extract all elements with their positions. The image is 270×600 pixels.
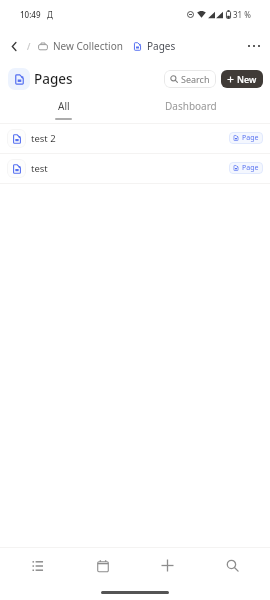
- button[interactable]: Add: [135, 548, 200, 583]
- button[interactable]: Search: [200, 548, 265, 583]
- staticText: 31 %: [233, 9, 251, 20]
- staticText: All: [58, 99, 70, 113]
- staticText: test 2: [31, 132, 56, 145]
- staticText: test: [31, 162, 48, 175]
- staticText: Pages: [147, 39, 176, 53]
- button[interactable]: Calendar: [70, 548, 135, 583]
- button[interactable]: test 2: [0, 124, 270, 153]
- staticText: Д: [47, 9, 53, 20]
- button[interactable]: Search: [164, 70, 216, 88]
- staticText: New: [237, 73, 257, 85]
- staticText: 10:49: [20, 9, 41, 20]
- button[interactable]: Back: [5, 37, 23, 55]
- staticText: Page: [242, 163, 259, 173]
- staticText: Pages: [34, 70, 73, 88]
- staticText: Dashboard: [165, 99, 217, 113]
- button[interactable]: New: [221, 70, 263, 88]
- button[interactable]: Dashboard: [127, 96, 254, 123]
- staticText: /: [27, 40, 31, 52]
- staticText: Search: [181, 73, 210, 85]
- button[interactable]: All: [0, 96, 127, 123]
- staticText: Page: [242, 133, 259, 143]
- button[interactable]: Lists: [5, 548, 70, 583]
- button[interactable]: New Collection: [38, 39, 123, 53]
- button[interactable]: Pages: [133, 39, 176, 53]
- button[interactable]: test: [0, 154, 270, 183]
- button[interactable]: More options: [244, 36, 264, 56]
- staticText: New Collection: [53, 39, 123, 53]
